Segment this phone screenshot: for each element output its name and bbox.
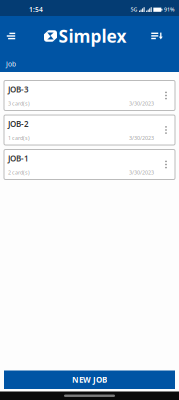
staticText: 2 card(s) bbox=[8, 169, 30, 176]
button[interactable]: Sort bbox=[146, 16, 168, 56]
staticText: 1 card(s) bbox=[8, 134, 30, 141]
button[interactable]: NEW JOB bbox=[4, 370, 175, 389]
button[interactable]: JOB-2 bbox=[4, 115, 175, 145]
staticText: 3 card(s) bbox=[8, 100, 30, 107]
staticText: NEW JOB bbox=[72, 374, 107, 385]
staticText: 1:54 bbox=[29, 5, 43, 14]
button[interactable]: Menu bbox=[0, 16, 22, 56]
staticText: 3/30/2023 bbox=[129, 100, 154, 107]
button[interactable]: More options bbox=[157, 149, 175, 179]
staticText: JOB-2 bbox=[8, 118, 29, 129]
staticText: 3/30/2023 bbox=[129, 134, 154, 141]
staticText: 5G bbox=[130, 6, 137, 13]
staticText: JOB-1 bbox=[8, 153, 29, 164]
staticText: 91% bbox=[164, 6, 175, 13]
staticText: Simplex bbox=[58, 24, 126, 47]
button[interactable]: More options bbox=[157, 80, 175, 110]
button[interactable]: More options bbox=[157, 115, 175, 145]
button[interactable]: JOB-3 bbox=[4, 80, 175, 110]
staticText: JOB-3 bbox=[8, 84, 29, 95]
staticText: Job bbox=[6, 60, 16, 68]
staticText: 3/30/2023 bbox=[129, 169, 154, 176]
button[interactable]: JOB-1 bbox=[4, 149, 175, 179]
